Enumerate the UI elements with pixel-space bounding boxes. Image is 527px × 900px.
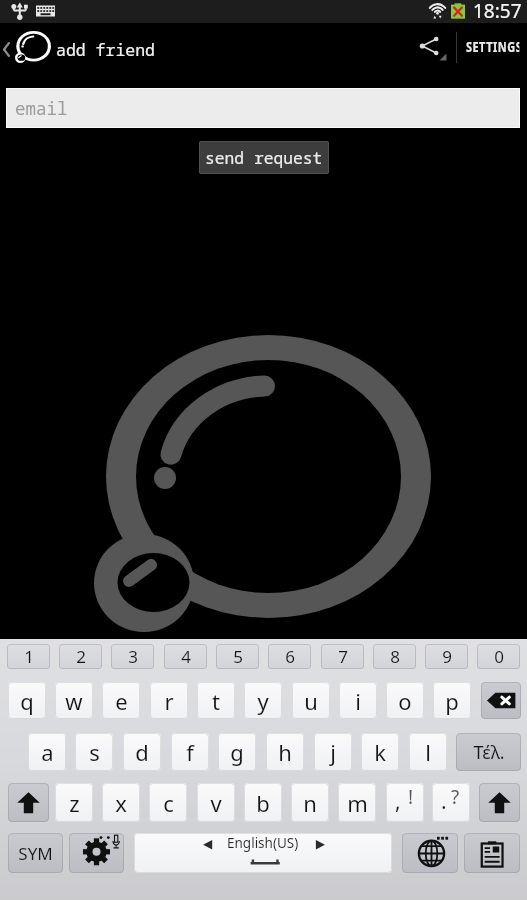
button[interactable]: . [432, 783, 470, 822]
staticText: n [303, 788, 317, 818]
button[interactable]: Clipboard [464, 833, 520, 873]
button[interactable]: 6 [268, 644, 311, 669]
staticText: c [163, 788, 174, 818]
button[interactable]: z [55, 783, 93, 822]
staticText: o [398, 686, 412, 716]
staticText: y [257, 686, 269, 716]
button[interactable]: SETTINGS [458, 27, 527, 72]
button[interactable]: 4 [164, 644, 207, 669]
staticText: add friend [56, 38, 155, 60]
button[interactable]: 0 [477, 644, 520, 669]
button[interactable]: k [361, 733, 399, 771]
staticText: 3 [128, 645, 138, 668]
button[interactable]: Backspace [481, 682, 521, 719]
staticText: English(US) [227, 834, 299, 852]
staticText: j [330, 737, 336, 767]
staticText: 5 [233, 645, 243, 668]
staticText: u [304, 686, 318, 716]
staticText: 6 [285, 645, 295, 668]
staticText: g [230, 737, 244, 767]
staticText: SYM [18, 842, 53, 865]
button[interactable]: 3 [111, 644, 154, 669]
button[interactable]: 9 [425, 644, 468, 669]
button[interactable]: , [386, 783, 424, 822]
staticText: i [355, 686, 361, 716]
button[interactable]: y [244, 682, 282, 719]
button[interactable]: a [28, 733, 66, 771]
staticText: e [115, 686, 128, 716]
staticText: ? [451, 784, 460, 810]
staticText: Τέλ. [473, 740, 505, 765]
button[interactable]: l [409, 733, 447, 771]
staticText: 1 [24, 645, 34, 668]
button[interactable]: u [292, 682, 330, 719]
staticText: r [164, 686, 174, 716]
staticText: 8 [390, 645, 400, 668]
staticText: 4 [181, 645, 191, 668]
staticText: l [425, 737, 431, 767]
button[interactable]: f [171, 733, 209, 771]
button[interactable]: j [314, 733, 352, 771]
staticText: q [20, 686, 34, 716]
staticText: f [186, 737, 194, 767]
staticText: email [15, 96, 68, 120]
staticText: v [210, 788, 222, 818]
button[interactable]: 1 [7, 644, 50, 669]
button[interactable]: English(US) [134, 833, 392, 873]
button[interactable]: 2 [59, 644, 102, 669]
staticText: send request [205, 147, 323, 169]
button[interactable]: d [123, 733, 161, 771]
staticText: h [278, 737, 292, 767]
button[interactable]: m [338, 783, 376, 822]
staticText: ! [408, 784, 414, 810]
button[interactable]: Τέλ. [456, 733, 521, 771]
button[interactable]: Shift [8, 783, 49, 822]
button[interactable]: c [149, 783, 187, 822]
staticText: a [41, 737, 54, 767]
button[interactable]: 8 [373, 644, 416, 669]
button[interactable]: p [433, 682, 471, 719]
staticText: 2 [76, 645, 86, 668]
button[interactable]: e [102, 682, 140, 719]
button[interactable]: v [197, 783, 235, 822]
button[interactable]: Shift [479, 783, 520, 822]
staticText: 7 [338, 645, 348, 668]
button[interactable]: n [291, 783, 329, 822]
staticText: . [441, 787, 447, 816]
button[interactable]: Keyboard settings [69, 833, 124, 873]
button[interactable]: x [102, 783, 140, 822]
button[interactable]: SYM [8, 833, 63, 873]
button[interactable]: q [8, 682, 46, 719]
staticText: x [115, 788, 127, 818]
button[interactable]: i [339, 682, 377, 719]
button[interactable]: o [386, 682, 424, 719]
staticText: w [65, 686, 83, 716]
button[interactable]: b [244, 783, 282, 822]
button[interactable]: send request [199, 141, 329, 174]
button[interactable]: t [197, 682, 235, 719]
button[interactable]: Share [412, 27, 456, 72]
staticText: d [135, 737, 149, 767]
button[interactable]: email [6, 88, 520, 128]
button[interactable]: 7 [321, 644, 364, 669]
button[interactable]: 5 [216, 644, 259, 669]
staticText: , [395, 787, 401, 816]
staticText: 0 [494, 645, 504, 668]
staticText: 18:57 [473, 0, 522, 21]
button[interactable]: add friend [0, 27, 160, 72]
staticText: m [347, 788, 368, 818]
staticText: 9 [442, 645, 452, 668]
button[interactable]: s [75, 733, 113, 771]
staticText: b [256, 788, 270, 818]
button[interactable]: g [218, 733, 256, 771]
button[interactable]: w [55, 682, 93, 719]
staticText: t [212, 686, 220, 716]
staticText: z [69, 788, 80, 818]
button[interactable]: h [266, 733, 304, 771]
staticText: SETTINGS [466, 37, 519, 56]
button[interactable]: Change language [402, 833, 458, 873]
button[interactable]: r [150, 682, 188, 719]
staticText: p [445, 686, 459, 716]
staticText: k [374, 737, 386, 767]
staticText: s [89, 737, 100, 767]
